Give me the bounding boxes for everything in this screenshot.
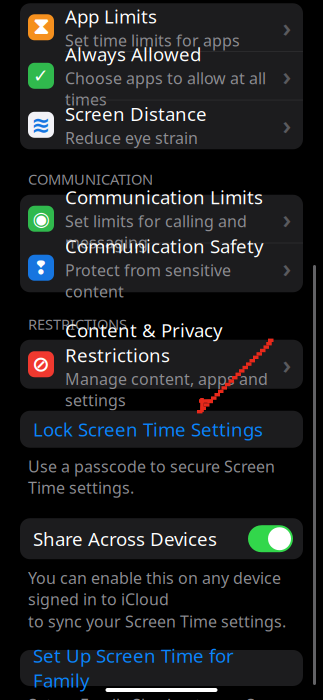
staticText: › (282, 108, 291, 142)
staticText: › (282, 202, 291, 235)
staticText: Content & Privacy Restrictions (65, 318, 223, 367)
staticText: App Limits (65, 4, 157, 29)
staticText: COMMUNICATION (28, 169, 153, 189)
staticText: Manage content, apps and settings (65, 368, 268, 411)
staticText: to sync your Screen Time settings. (28, 611, 286, 632)
staticText: ≋ (31, 112, 50, 138)
staticText: ⧗ (33, 16, 49, 38)
button[interactable]: Set Up Screen Time for Family (20, 650, 303, 686)
staticText: Protect from sensitive content (65, 259, 231, 302)
staticText: ❢ (33, 257, 49, 278)
button[interactable]: Lock Screen Time Settings (20, 411, 303, 448)
staticText: Communication Safety (65, 234, 264, 258)
button[interactable]: Share Across Devices (20, 518, 303, 559)
button[interactable]: ◉ (20, 195, 303, 243)
staticText: Use a passcode to secure Screen Time set… (28, 456, 275, 498)
staticText: Choose apps to allow at all times (65, 67, 266, 110)
staticText: Set time limits for apps (65, 30, 240, 51)
staticText: RESTRICTIONS (28, 314, 127, 334)
staticText: Set Up Screen Time for Family (33, 643, 234, 693)
staticText: Set up Family Sharing to use Screen Time… (28, 694, 297, 700)
staticText: Share Across Devices (33, 526, 217, 551)
staticText: You can enable this on any device signed… (28, 567, 281, 610)
staticText: ◉ (32, 207, 49, 230)
staticText: Lock Screen Time Settings (33, 417, 263, 442)
button[interactable]: ⧗ (20, 3, 303, 52)
staticText: Communication Limits (65, 185, 263, 209)
staticText: Always Allowed (65, 42, 201, 66)
staticText: › (282, 10, 291, 44)
button[interactable]: ⊘ (20, 340, 303, 389)
button[interactable]: ✓ (20, 52, 303, 100)
staticText: › (282, 347, 291, 381)
staticText: › (282, 59, 291, 93)
staticText: Screen Distance (65, 101, 207, 126)
staticText: Set limits for calling and messaging (65, 210, 247, 253)
button[interactable]: ❢ (20, 243, 303, 292)
staticText: ⊘ (32, 352, 50, 376)
staticText: Reduce eye strain (65, 127, 198, 148)
button[interactable]: ≋ (20, 100, 303, 149)
staticText: › (282, 251, 291, 284)
staticText: ✓ (33, 65, 49, 86)
